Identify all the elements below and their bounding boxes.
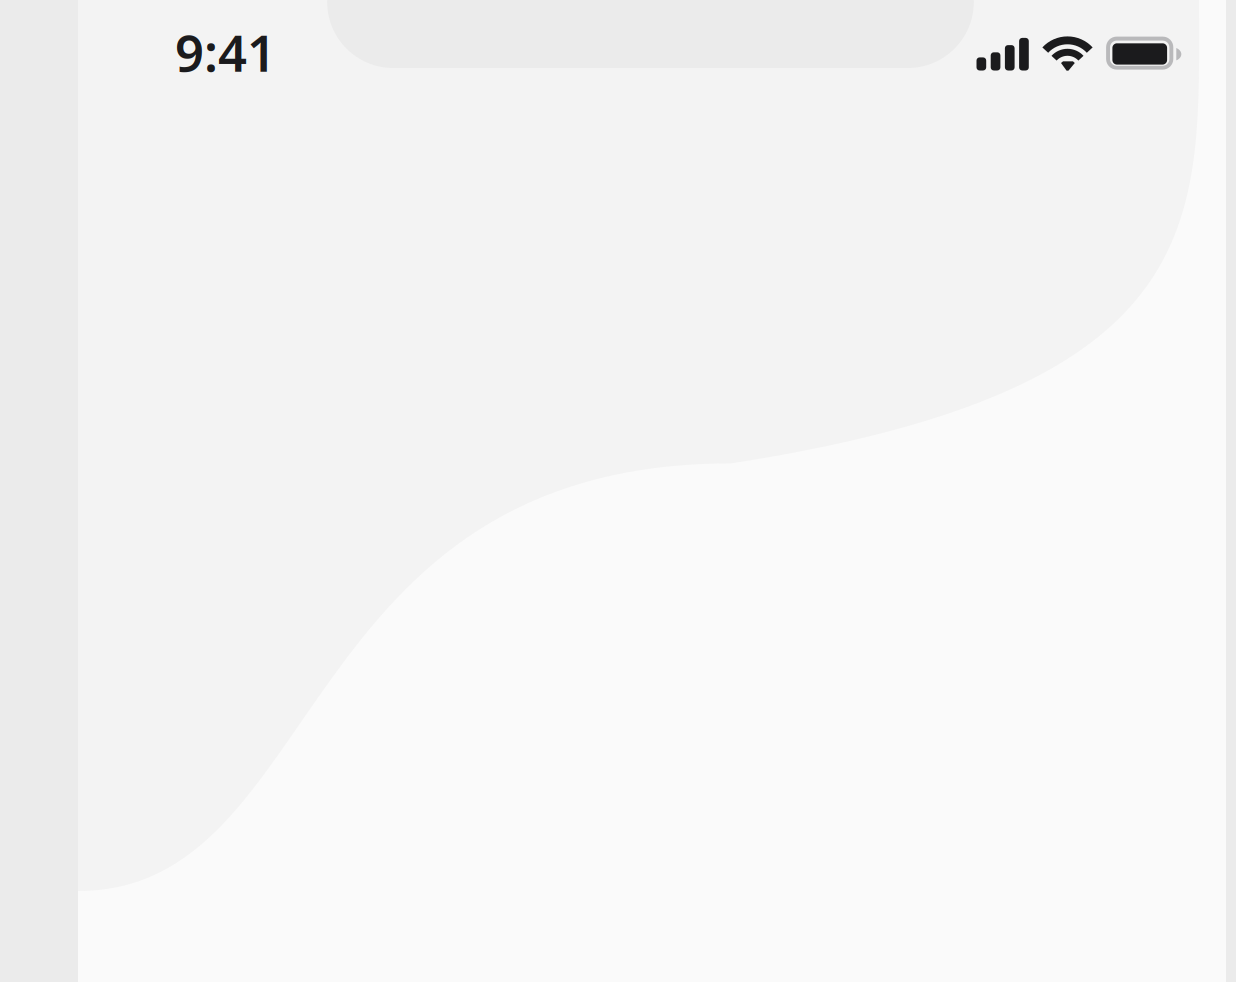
staticText: 9:41 bbox=[175, 18, 276, 86]
